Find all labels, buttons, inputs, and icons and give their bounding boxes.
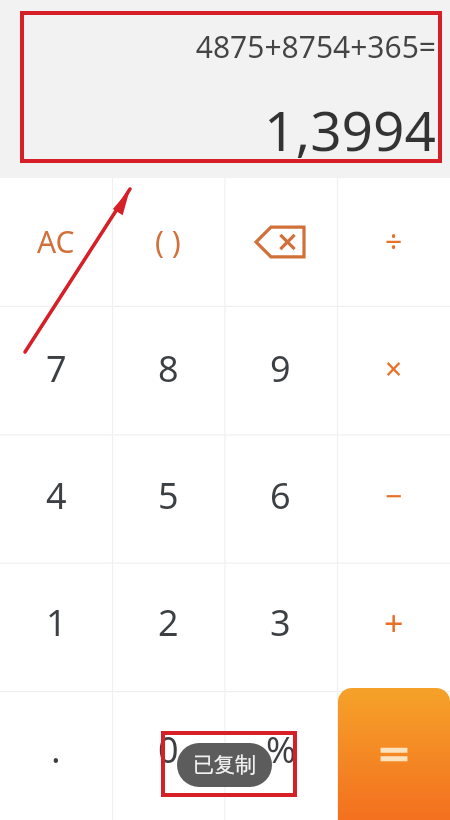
staticText: ( )	[155, 221, 181, 262]
staticText: ÷	[385, 221, 403, 262]
staticText: 1,3994	[0, 92, 436, 167]
button[interactable]: ( )	[112, 178, 224, 305]
staticText: 0	[158, 725, 179, 774]
staticText: 4	[46, 471, 67, 520]
staticText: 已复制	[193, 752, 256, 778]
staticText: 8	[158, 344, 179, 393]
staticText: 2	[158, 598, 179, 647]
staticText: 5	[158, 471, 179, 520]
staticText: −	[385, 475, 403, 516]
staticText: 4875+8754+365=	[0, 26, 436, 67]
staticText: 9	[270, 344, 291, 393]
button[interactable]: ×	[337, 305, 450, 432]
button[interactable]: Equals	[338, 688, 450, 820]
staticText: AC	[37, 221, 75, 262]
button[interactable]: .	[0, 686, 112, 813]
staticText: .	[51, 725, 61, 774]
staticText: 3	[270, 598, 291, 647]
button[interactable]: 5	[112, 432, 224, 559]
staticText: 6	[270, 471, 291, 520]
button[interactable]: 4	[0, 432, 112, 559]
button[interactable]: 2	[112, 559, 224, 686]
staticText: %	[266, 725, 296, 774]
button[interactable]: ÷	[337, 178, 450, 305]
staticText: 1	[46, 598, 67, 647]
button[interactable]: +	[337, 559, 450, 686]
button[interactable]: 6	[224, 432, 337, 559]
staticText: +	[384, 600, 404, 646]
button[interactable]: AC	[0, 178, 112, 305]
button[interactable]: Backspace	[224, 178, 337, 305]
button[interactable]: −	[337, 432, 450, 559]
staticText: ×	[385, 348, 403, 389]
button[interactable]: 3	[224, 559, 337, 686]
button[interactable]: 8	[112, 305, 224, 432]
staticText: 7	[46, 344, 67, 393]
button[interactable]: 7	[0, 305, 112, 432]
button[interactable]: %	[224, 686, 337, 813]
button[interactable]: 1	[0, 559, 112, 686]
button[interactable]: 9	[224, 305, 337, 432]
button[interactable]: 0	[112, 686, 224, 813]
